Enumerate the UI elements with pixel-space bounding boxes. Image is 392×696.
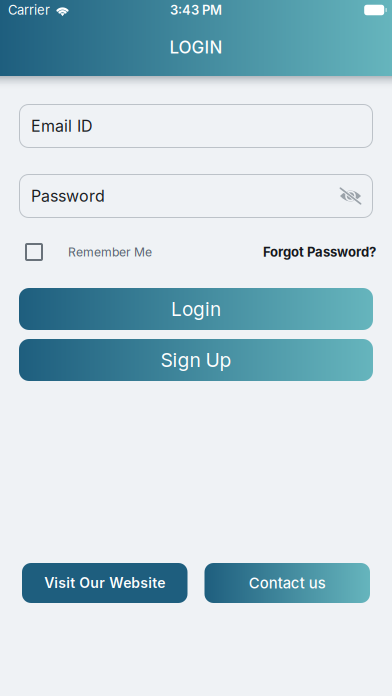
staticText: Contact us [249,574,326,592]
button[interactable]: Email ID [19,104,373,148]
button[interactable]: Remember Me [25,237,152,267]
staticText: Remember Me [68,245,152,259]
button[interactable]: Password [19,174,373,218]
staticText: Carrier [8,2,50,18]
staticText: Email ID [31,116,93,136]
staticText: Sign Up [160,348,231,372]
button[interactable]: Contact us [204,563,370,603]
staticText: LOGIN [169,37,222,58]
button[interactable]: Login [19,288,373,330]
staticText: Visit Our Website [44,574,165,591]
staticText: Forgot Password? [263,244,376,260]
staticText: 3:43 PM [170,2,222,18]
button[interactable]: Visit Our Website [22,563,187,603]
button[interactable]: Sign Up [19,339,373,381]
button[interactable]: Forgot Password? [263,238,376,266]
staticText: Login [171,297,221,320]
staticText: Password [31,186,105,206]
